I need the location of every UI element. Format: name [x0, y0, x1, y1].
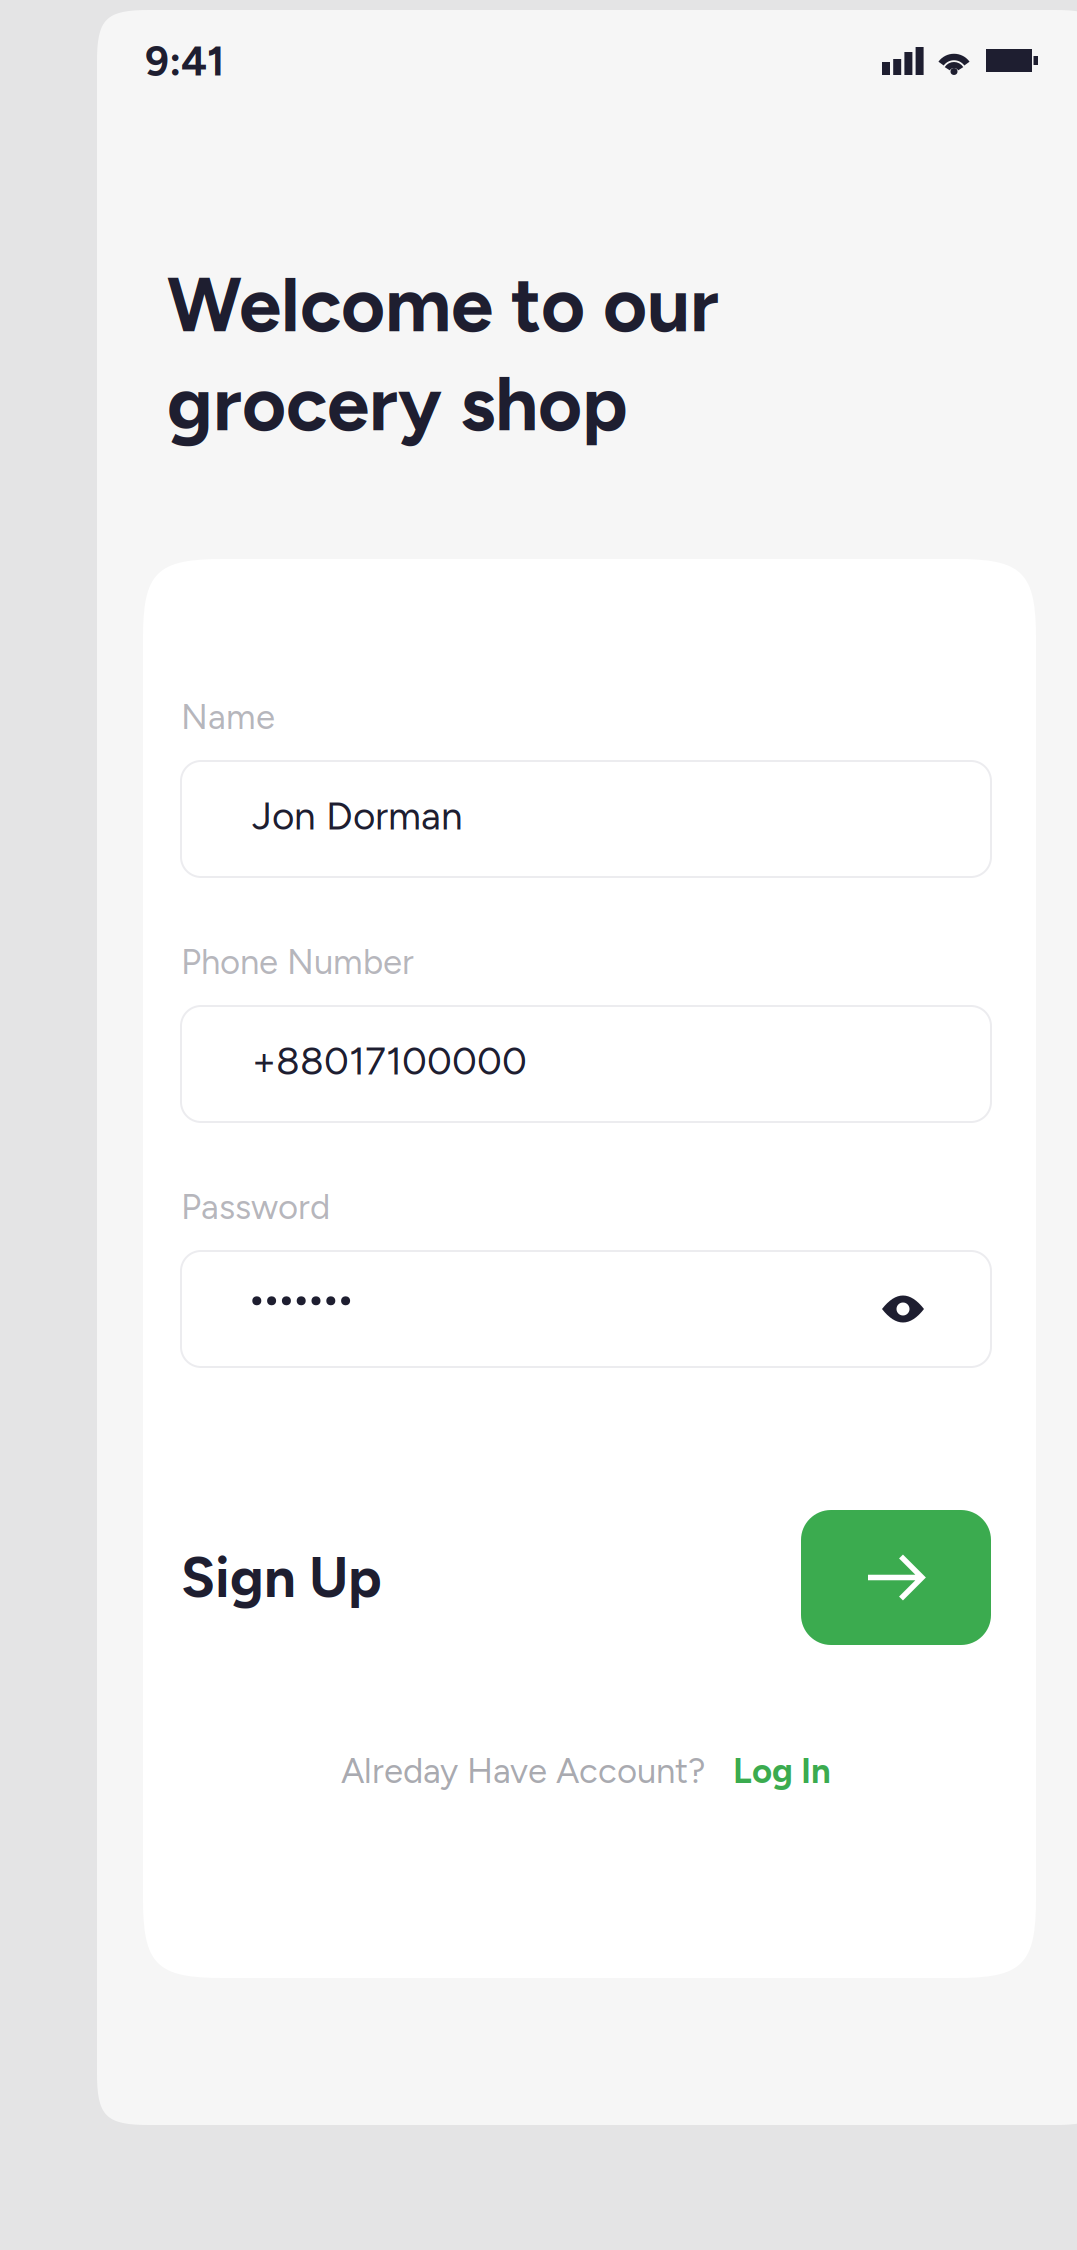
staticText: Welcome to our	[167, 259, 719, 350]
staticText: Sign Up	[181, 1544, 382, 1611]
staticText: +88017100000	[252, 1038, 527, 1084]
button[interactable]: Phone Number	[181, 1006, 991, 1122]
staticText: Password	[181, 1186, 330, 1228]
staticText: Jon Dorman	[252, 793, 463, 839]
staticText: grocery shop	[167, 358, 628, 449]
button[interactable]: Name	[181, 761, 991, 877]
staticText: 9:41	[145, 36, 224, 86]
button[interactable]: Show password	[860, 1273, 946, 1345]
staticText: Name	[181, 696, 275, 738]
button[interactable]: Sign Up	[801, 1510, 991, 1645]
staticText: Phone Number	[181, 941, 414, 983]
button[interactable]: Alreday Have Account?	[181, 1750, 991, 1792]
staticText: Alreday Have Account?	[341, 1750, 705, 1792]
staticText: Log In	[733, 1750, 831, 1792]
button[interactable]: Password	[181, 1251, 991, 1367]
